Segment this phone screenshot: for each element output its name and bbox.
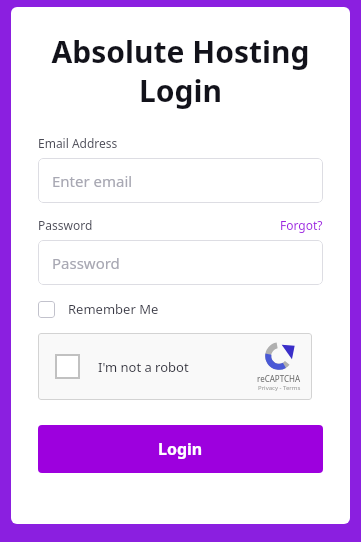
staticText: Password [52, 253, 120, 273]
staticText: Absolute Hosting Login [27, 31, 334, 110]
button[interactable]: I'm not a robot [38, 333, 312, 400]
button[interactable]: Password [38, 240, 323, 285]
staticText: Enter email [52, 171, 133, 191]
staticText: reCAPTCHA [257, 373, 301, 384]
button[interactable]: Login [38, 425, 323, 473]
staticText: Login [158, 438, 203, 460]
button[interactable]: Forgot? [280, 217, 323, 233]
staticText: Password [38, 217, 93, 233]
staticText: Forgot? [280, 217, 323, 233]
other: reCAPTCHA logo [264, 341, 294, 371]
staticText: Remember Me [68, 300, 159, 318]
button[interactable]: Remember Me [38, 300, 159, 318]
staticText: Email Address [38, 135, 118, 151]
staticText: I'm not a robot [98, 358, 189, 376]
staticText: Privacy - Terms [258, 384, 301, 392]
button[interactable]: Enter email [38, 158, 323, 203]
